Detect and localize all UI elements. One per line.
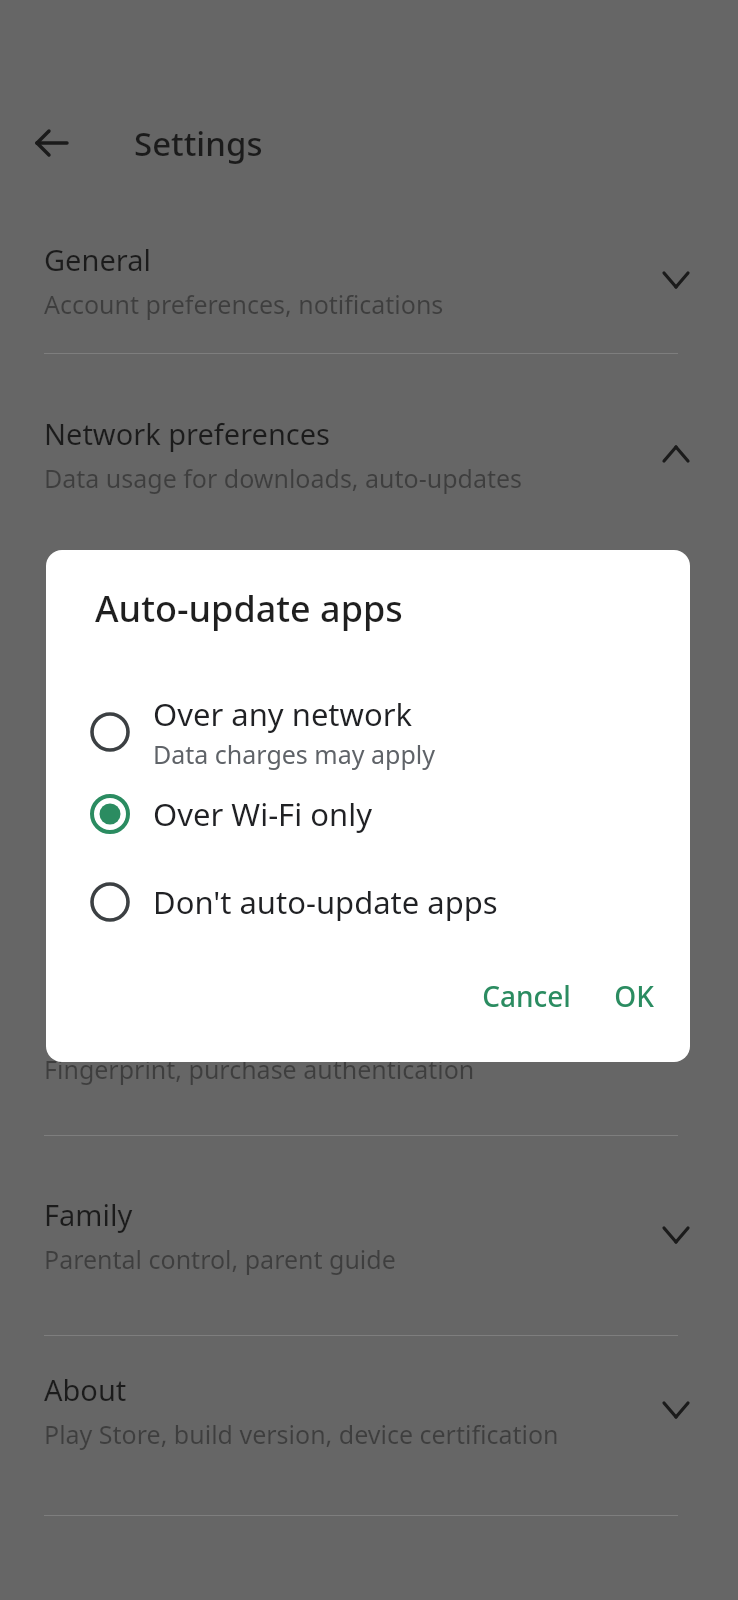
staticText: Data usage for downloads, auto-updates bbox=[44, 461, 523, 495]
staticText: Parental control, parent guide bbox=[44, 1242, 396, 1276]
button[interactable]: Cancel bbox=[459, 963, 593, 1029]
staticText: Fingerprint, purchase authentication bbox=[44, 1052, 475, 1086]
button[interactable]: General bbox=[0, 224, 738, 336]
staticText: Cancel bbox=[482, 977, 571, 1015]
staticText: General bbox=[44, 240, 151, 279]
staticText: Settings bbox=[134, 121, 263, 166]
button[interactable]: Network preferences bbox=[0, 398, 738, 510]
button[interactable]: About bbox=[0, 1354, 738, 1466]
staticText: Account preferences, notifications bbox=[44, 287, 444, 321]
staticText: Auto-update apps bbox=[95, 584, 403, 633]
staticText: About bbox=[44, 1370, 127, 1409]
staticText: Don't auto-update apps bbox=[153, 881, 498, 923]
button[interactable]: OK bbox=[593, 963, 675, 1029]
button[interactable]: Family bbox=[0, 1179, 738, 1291]
button[interactable]: Back bbox=[22, 113, 82, 173]
staticText: OK bbox=[614, 977, 654, 1015]
staticText: Family bbox=[44, 1195, 133, 1234]
button[interactable]: Over Wi-Fi only bbox=[46, 783, 690, 845]
staticText: Play Store, build version, device certif… bbox=[44, 1417, 559, 1451]
button[interactable]: Over any network bbox=[46, 693, 690, 771]
staticText: Data charges may apply bbox=[153, 737, 435, 771]
button[interactable]: Don't auto-update apps bbox=[46, 871, 690, 933]
staticText: Network preferences bbox=[44, 414, 330, 453]
staticText: Over Wi-Fi only bbox=[153, 793, 372, 835]
staticText: Over any network bbox=[153, 693, 413, 735]
